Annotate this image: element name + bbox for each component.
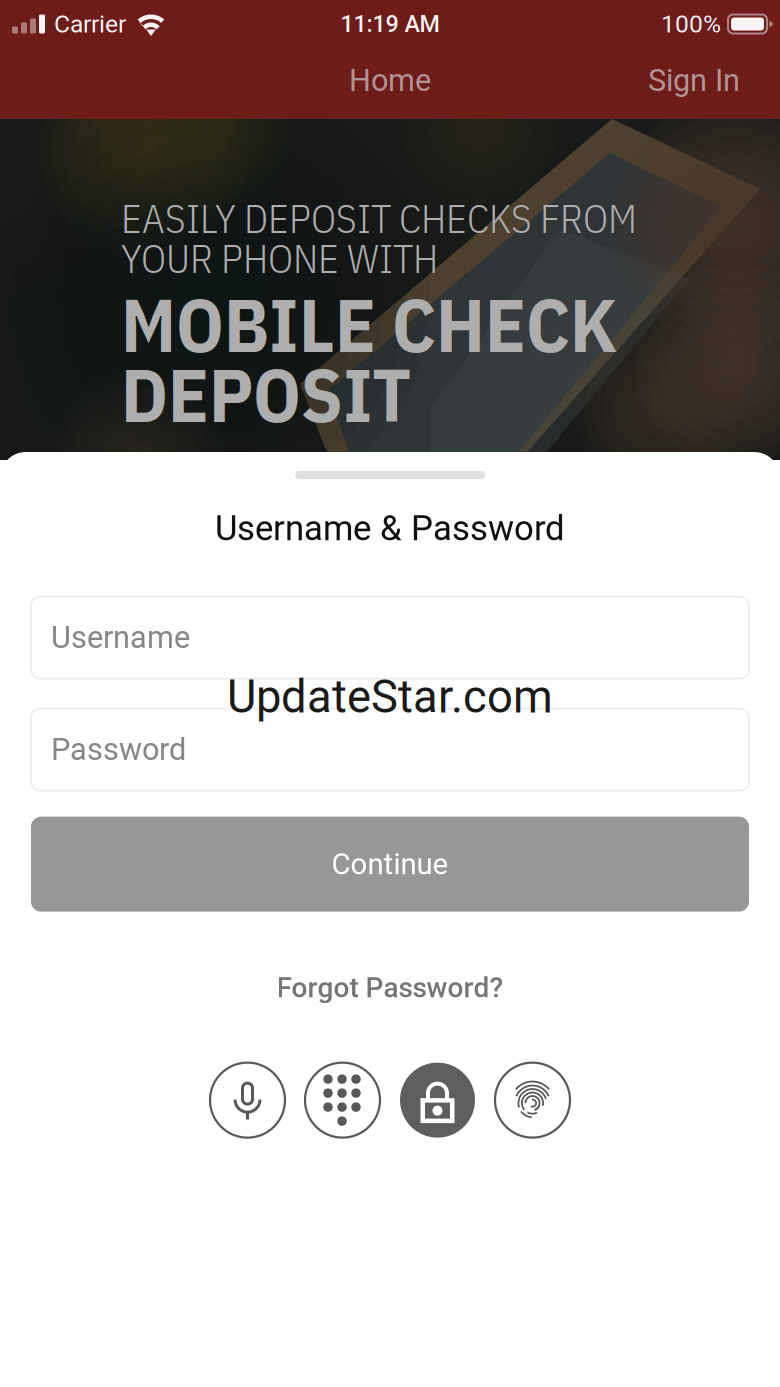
button[interactable]: Touch ID login	[495, 1063, 570, 1138]
staticText: Home	[349, 62, 431, 98]
staticText: 11:19 AM	[340, 10, 439, 38]
staticText: UpdateStar.com	[227, 670, 553, 723]
staticText: EASILY DEPOSIT CHECKS FROM	[121, 192, 637, 244]
button[interactable]: PIN keypad	[305, 1063, 380, 1138]
staticText: Username	[51, 620, 190, 656]
staticText: Username & Password	[215, 508, 565, 549]
staticText: Carrier	[54, 9, 126, 38]
staticText: Sign In	[648, 62, 740, 98]
button[interactable]: Password	[31, 709, 749, 791]
staticText: Forgot Password?	[276, 971, 503, 1004]
staticText: Password	[51, 732, 186, 768]
button[interactable]: Username	[31, 597, 749, 679]
button[interactable]: Home	[305, 48, 475, 119]
button[interactable]: Forgot Password?	[276, 963, 503, 1013]
staticText: DEPOSIT	[121, 345, 411, 443]
staticText: 100%	[661, 9, 721, 38]
staticText: Continue	[331, 847, 448, 881]
button[interactable]: Voice login	[210, 1063, 285, 1138]
button[interactable]: Sign In	[629, 48, 759, 119]
button[interactable]: Password login	[400, 1063, 475, 1138]
staticText: YOUR PHONE WITH	[121, 232, 438, 284]
button[interactable]: Continue	[31, 817, 749, 912]
staticText: MOBILE CHECK	[121, 275, 617, 373]
